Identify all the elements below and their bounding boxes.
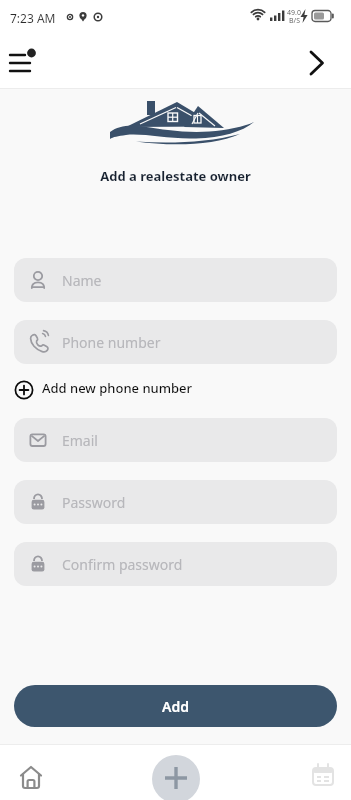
staticText: Add new phone number xyxy=(42,379,193,397)
button[interactable]: Add new phone number xyxy=(12,374,193,402)
staticText: Add xyxy=(162,697,189,716)
staticText: 49.0 xyxy=(287,8,301,18)
staticText: 7:23 AM xyxy=(10,10,56,26)
button[interactable]: Phone number xyxy=(14,320,337,364)
staticText: Add a realestate owner xyxy=(0,167,351,185)
staticText: Password xyxy=(62,493,126,512)
staticText: B/S xyxy=(289,16,300,26)
button[interactable] xyxy=(14,757,48,793)
staticText: Email xyxy=(62,431,98,450)
button[interactable] xyxy=(2,44,42,80)
staticText: Confirm password xyxy=(62,555,183,574)
staticText: Name xyxy=(62,271,102,290)
button[interactable]: Email xyxy=(14,418,337,462)
button[interactable] xyxy=(306,757,340,793)
button[interactable]: Password xyxy=(14,480,337,524)
button[interactable]: Name xyxy=(14,258,337,302)
button[interactable]: Confirm password xyxy=(14,542,337,586)
staticText: Phone number xyxy=(62,333,161,352)
button[interactable] xyxy=(296,44,338,82)
button[interactable]: Add xyxy=(14,685,337,727)
button[interactable] xyxy=(152,755,200,800)
